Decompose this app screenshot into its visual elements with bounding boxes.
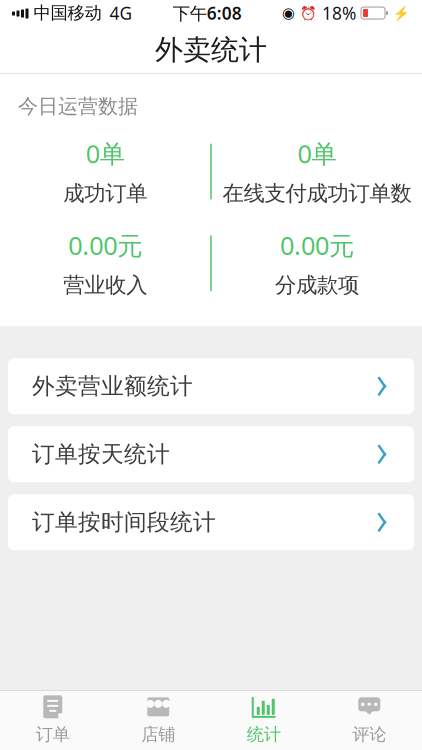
- staticText: 评论: [352, 724, 386, 745]
- staticText: 18%: [322, 1, 356, 24]
- staticText: 统计: [247, 724, 281, 745]
- staticText: 下午6:08: [173, 1, 242, 24]
- staticText: 0单: [297, 137, 336, 170]
- button[interactable]: 店铺: [105, 691, 211, 749]
- button[interactable]: 订单按时间段统计: [8, 494, 414, 550]
- staticText: ⚡: [393, 5, 410, 21]
- staticText: ⏰: [300, 5, 317, 21]
- staticText: ◉: [282, 5, 295, 21]
- staticText: 在线支付成功订单数: [222, 180, 411, 206]
- staticText: 成功订单: [63, 180, 147, 206]
- staticText: 分成款项: [275, 272, 359, 298]
- staticText: 今日运营数据: [18, 94, 138, 119]
- button[interactable]: 评论: [316, 691, 422, 749]
- staticText: 店铺: [141, 724, 175, 745]
- staticText: 订单: [36, 724, 70, 745]
- staticText: 营业收入: [63, 272, 147, 298]
- staticText: 外卖统计: [155, 33, 267, 67]
- staticText: 0单: [86, 137, 125, 170]
- button[interactable]: 订单: [0, 691, 105, 749]
- staticText: 中国移动: [33, 2, 101, 24]
- staticText: 0.00元: [68, 228, 142, 262]
- staticText: 4G: [109, 1, 132, 24]
- button[interactable]: 统计: [211, 691, 316, 749]
- staticText: 订单按时间段统计: [32, 508, 216, 536]
- staticText: 订单按天统计: [32, 440, 170, 468]
- staticText: 外卖营业额统计: [32, 372, 193, 400]
- button[interactable]: 订单按天统计: [8, 426, 414, 482]
- staticText: 0.00元: [280, 228, 354, 262]
- button[interactable]: 外卖营业额统计: [8, 358, 414, 414]
